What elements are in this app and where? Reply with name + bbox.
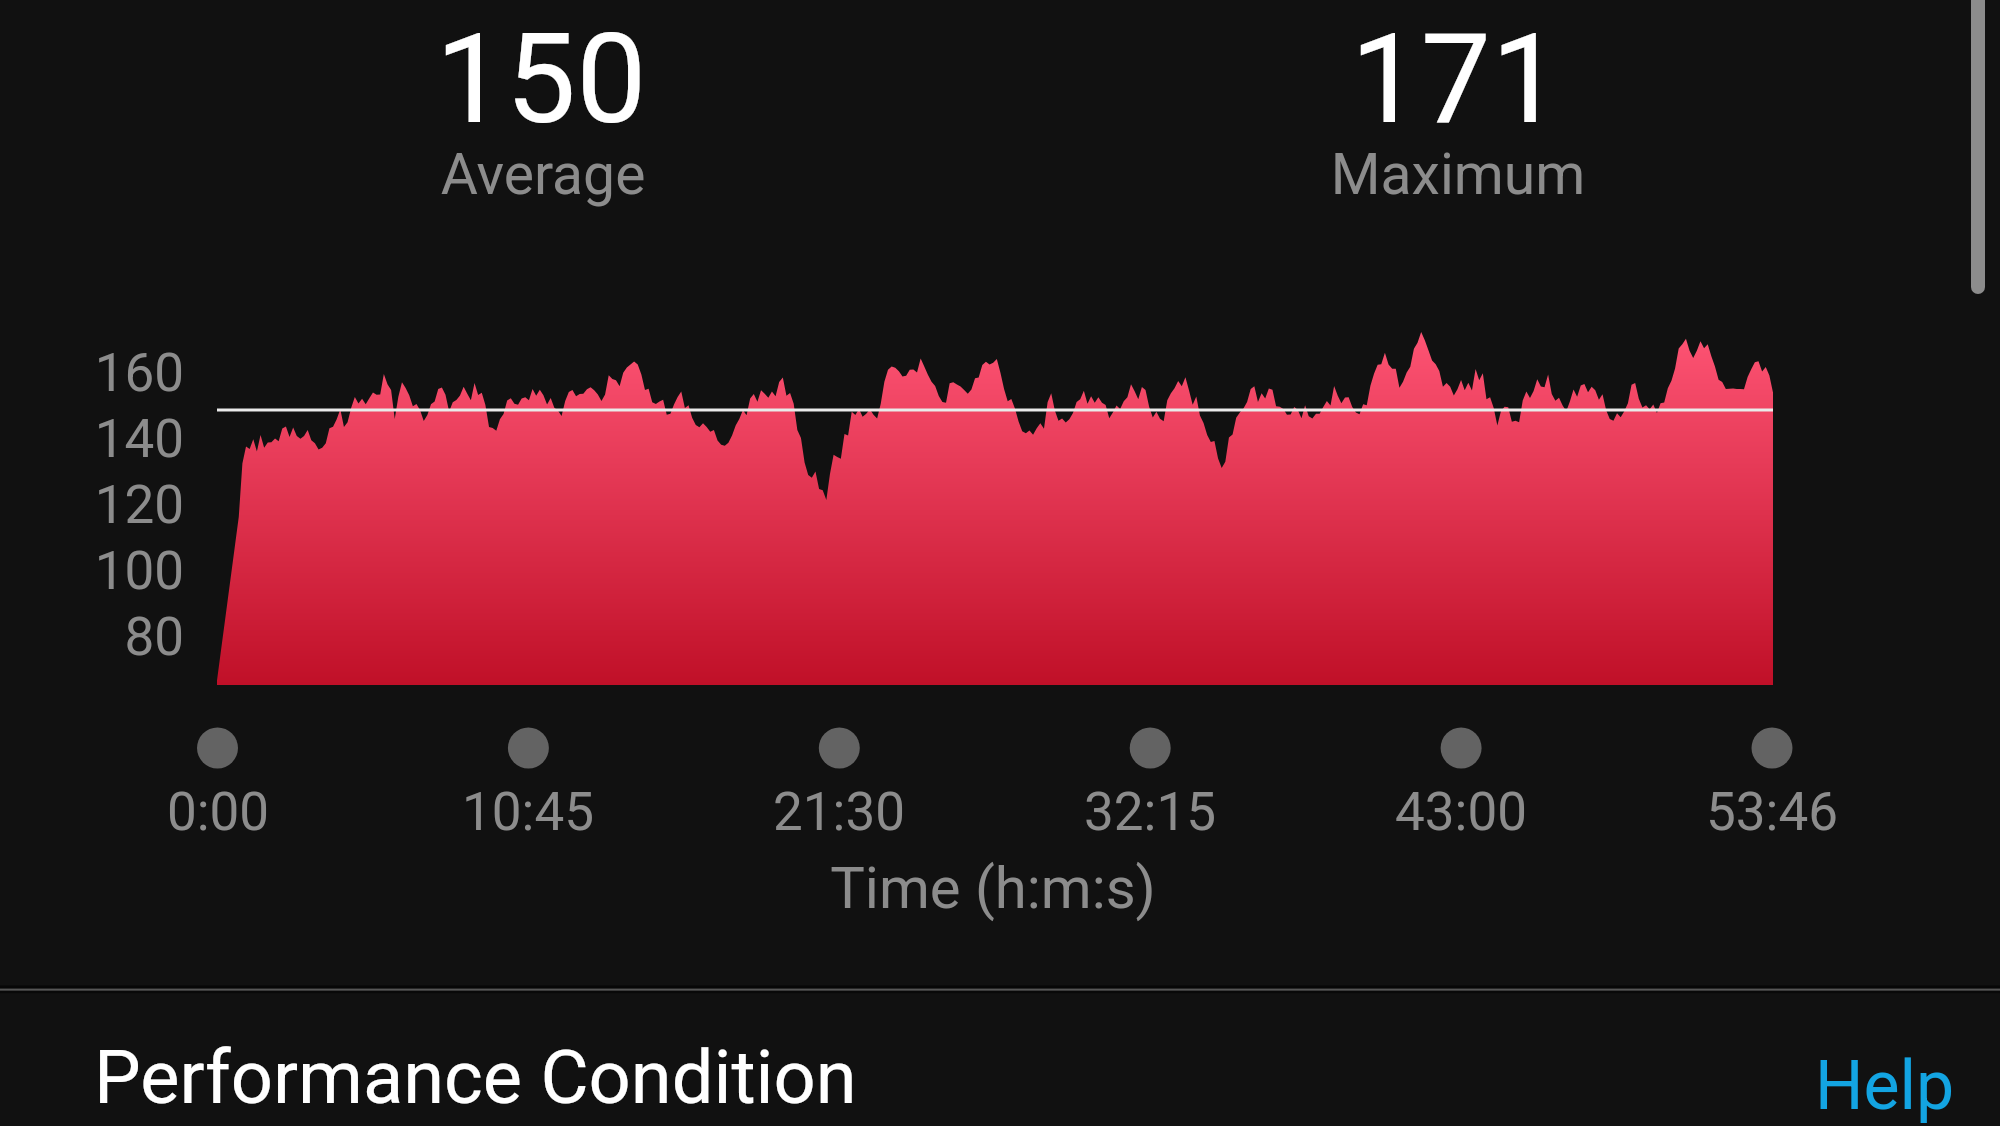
- staticText: 80: [0, 606, 184, 668]
- staticText: 43:00: [1011, 781, 1911, 843]
- staticText: 100: [0, 540, 184, 602]
- staticText: 171: [1006, 6, 1906, 152]
- staticText: 32:15: [700, 781, 1600, 843]
- staticText: Performance Condition: [94, 1034, 857, 1121]
- staticText: 10:45: [78, 781, 978, 843]
- staticText: 0:00: [0, 781, 668, 843]
- button[interactable]: Performance Condition: [0, 992, 2000, 1126]
- other: Heart rate chart: [0, 0, 2000, 1126]
- button[interactable]: 171: [1000, 0, 2000, 212]
- button[interactable]: Help: [1784, 1034, 1986, 1126]
- staticText: 150: [91, 6, 991, 152]
- staticText: 140: [0, 408, 184, 470]
- staticText: Time (h:m:s): [543, 854, 1443, 922]
- staticText: 160: [0, 342, 184, 404]
- staticText: Average: [93, 141, 993, 208]
- staticText: 21:30: [389, 781, 1289, 843]
- staticText: 53:46: [1322, 781, 2000, 843]
- staticText: 120: [0, 474, 184, 536]
- staticText: Maximum: [1008, 141, 1908, 208]
- staticText: Help: [1815, 1046, 1955, 1126]
- button[interactable]: 150: [0, 0, 1000, 212]
